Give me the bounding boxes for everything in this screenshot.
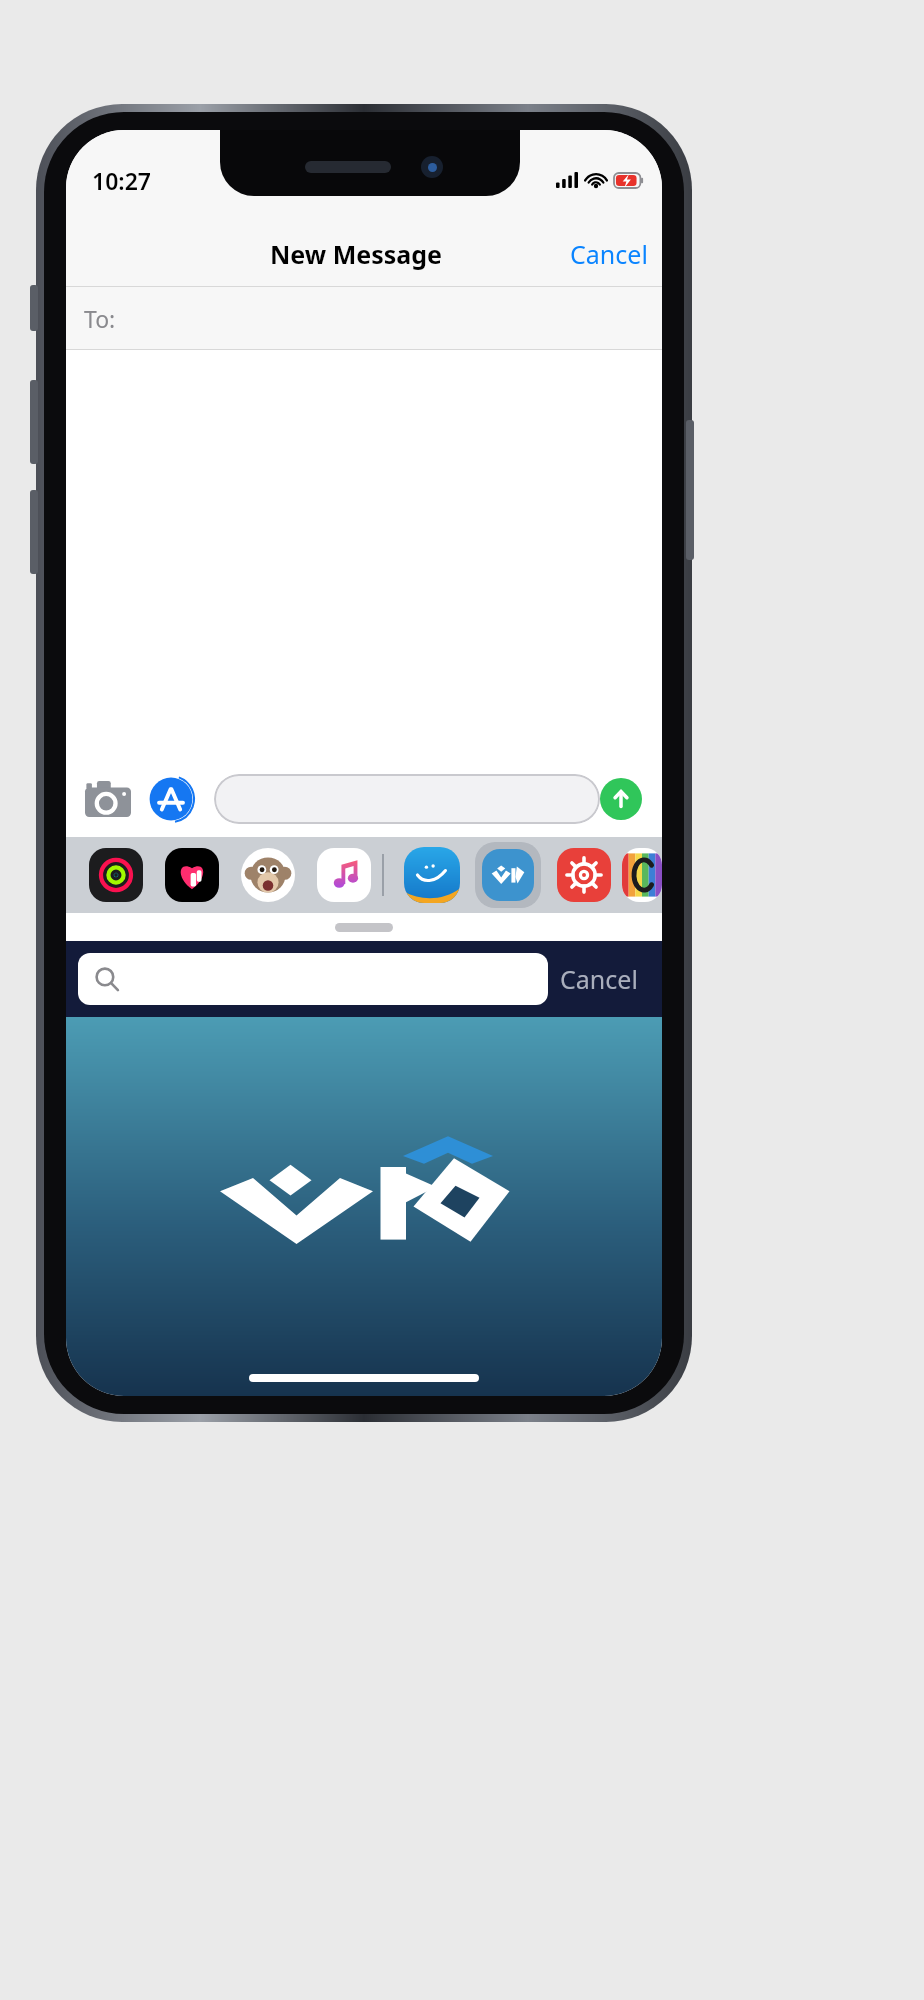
staticText: New Message (270, 237, 442, 271)
button[interactable]: App Store (146, 774, 196, 824)
button[interactable]: Memoji (230, 837, 306, 913)
button[interactable]: Camera (82, 773, 134, 825)
button[interactable]: Send (600, 778, 642, 820)
staticText: 10:27 (92, 165, 151, 196)
button[interactable]: Dubai (394, 837, 470, 913)
button[interactable]: VOX Cinemas (470, 837, 546, 913)
staticText: Cancel (560, 962, 638, 996)
button[interactable] (78, 953, 548, 1005)
button[interactable] (214, 774, 600, 824)
staticText: To: (84, 303, 116, 334)
button[interactable]: Cancel (556, 229, 662, 279)
button[interactable]: To: (66, 287, 662, 349)
button[interactable]: Settings (546, 837, 622, 913)
button[interactable]: Music (306, 837, 382, 913)
button[interactable]: Fitness (154, 837, 230, 913)
button[interactable]: Activity (78, 837, 154, 913)
button[interactable]: Cancel (548, 954, 650, 1004)
button[interactable]: More (622, 837, 662, 913)
staticText: Cancel (570, 237, 648, 271)
